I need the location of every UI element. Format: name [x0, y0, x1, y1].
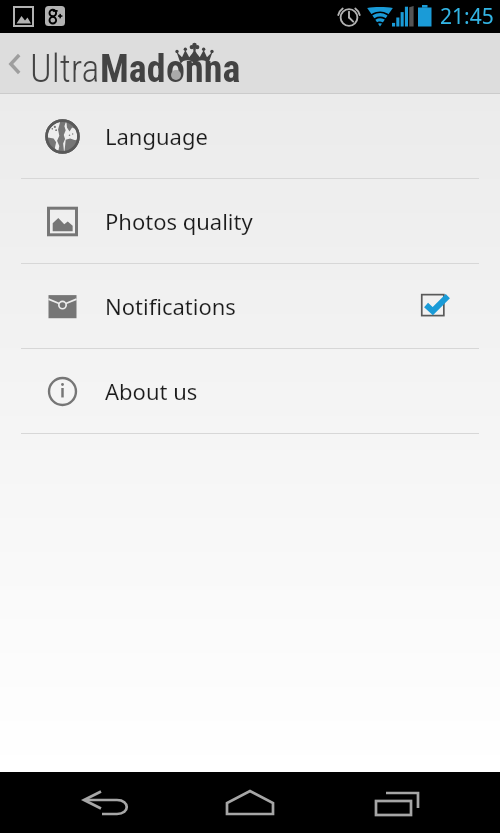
button[interactable]: Navigate up: [0, 33, 30, 94]
staticText: Ultra: [30, 47, 100, 92]
staticText: About us: [105, 376, 198, 406]
button[interactable]: Notifications toggle: [416, 286, 456, 326]
staticText: Mad: [100, 47, 166, 92]
staticText: nna: [185, 47, 241, 92]
button[interactable]: Language: [0, 94, 500, 178]
staticText: Photos quality: [105, 206, 253, 236]
button[interactable]: About us: [0, 349, 500, 433]
staticText: Language: [105, 121, 208, 151]
button[interactable]: Recent apps: [347, 772, 447, 833]
staticText: Notifications: [105, 291, 236, 321]
staticText: o: [166, 47, 185, 92]
button[interactable]: Notifications: [0, 264, 500, 348]
button[interactable]: Home: [200, 772, 300, 833]
button[interactable]: Back: [54, 772, 154, 833]
staticText: 21:45: [440, 2, 494, 31]
button[interactable]: Photos quality: [0, 179, 500, 263]
